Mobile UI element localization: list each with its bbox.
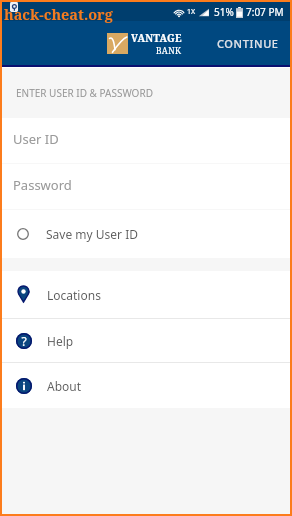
button[interactable]: Locations [2, 271, 290, 318]
staticText: ENTER USER ID & PASSWORD [16, 86, 153, 100]
staticText: BANK [156, 45, 182, 57]
staticText: ? [21, 333, 27, 349]
staticText: About [47, 378, 82, 394]
button[interactable]: About [2, 363, 290, 408]
button[interactable]: CONTINUE [204, 25, 290, 62]
button[interactable]: ? [2, 319, 290, 362]
staticText: Help [47, 333, 74, 349]
staticText: 7:07 PM [246, 5, 284, 19]
button[interactable]: Password [2, 164, 290, 209]
staticText: 1X [187, 7, 196, 17]
staticText: 51% [214, 5, 234, 19]
staticText: Locations [47, 287, 101, 303]
staticText: User ID [13, 130, 59, 148]
staticText: CONTINUE [217, 36, 279, 51]
staticText: Password [13, 176, 72, 194]
staticText: Save my User ID [46, 226, 138, 242]
button[interactable]: Save my User ID [2, 210, 290, 258]
staticText: VANTAGE [131, 31, 182, 45]
staticText: hack-cheat.org [4, 4, 113, 24]
button[interactable]: User ID [2, 118, 290, 163]
